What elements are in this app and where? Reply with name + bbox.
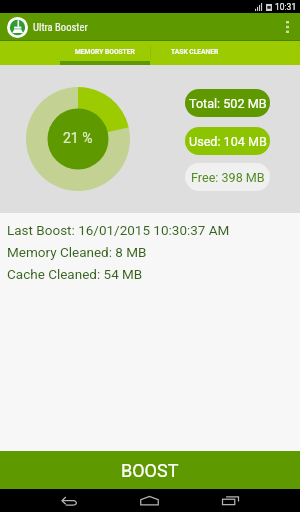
button[interactable]: Free: 398 MB [185, 163, 270, 191]
staticText: 10:31 [275, 2, 297, 12]
button[interactable]: BOOST [0, 451, 300, 489]
button[interactable]: Home [129, 489, 169, 512]
staticText: Memory Cleaned: 8 MB [7, 244, 147, 260]
staticText: 21 % [63, 130, 93, 146]
staticText: MEMORY BOOSTER [75, 48, 135, 56]
staticText: Total: 502 MB [189, 96, 267, 111]
staticText: Used: 104 MB [189, 134, 267, 149]
button[interactable]: Used: 104 MB [185, 127, 270, 155]
button[interactable]: MEMORY BOOSTER [60, 41, 150, 65]
button[interactable]: TASK CLEANER [150, 41, 240, 65]
staticText: Cache Cleaned: 54 MB [7, 266, 143, 282]
button[interactable]: Total: 502 MB [185, 89, 270, 117]
staticText: Free: 398 MB [191, 170, 265, 185]
button[interactable]: Recent apps [210, 489, 250, 512]
staticText: TASK CLEANER [171, 48, 219, 56]
button[interactable]: More options [274, 13, 300, 41]
staticText: Last Boost: 16/01/2015 10:30:37 AM [7, 222, 230, 238]
staticText: Ultra Booster [33, 21, 88, 33]
staticText: BOOST [121, 460, 179, 481]
button[interactable]: Back [49, 489, 89, 512]
